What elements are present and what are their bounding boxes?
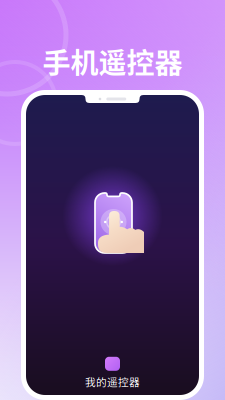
staticText: 手机遥控器: [42, 41, 182, 81]
staticText: 我的遥控器: [85, 374, 140, 389]
